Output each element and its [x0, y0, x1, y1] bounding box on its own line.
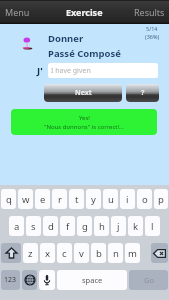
staticText: Results [134, 6, 165, 18]
staticText: I have given [51, 66, 91, 76]
button[interactable]: s [26, 216, 41, 236]
button[interactable]: d [43, 216, 58, 236]
staticText: Exercise [66, 6, 103, 18]
staticText: ? [141, 88, 145, 98]
staticText: v [79, 247, 84, 260]
staticText: 123 [4, 275, 17, 285]
button[interactable]: o [137, 189, 152, 209]
button[interactable]: Go [129, 270, 168, 290]
staticText: k [133, 220, 139, 233]
button[interactable]: Backspace [151, 243, 168, 263]
staticText: Next [75, 88, 92, 98]
staticText: (36%) [145, 33, 160, 40]
staticText: Passé Composé [48, 47, 121, 60]
button[interactable]: I have given [48, 63, 158, 78]
staticText: j [117, 220, 120, 233]
button[interactable]: Next [44, 84, 122, 102]
button[interactable]: space [57, 270, 127, 290]
staticText: f [66, 220, 70, 233]
staticText: o [142, 193, 148, 206]
staticText: Donner [48, 32, 84, 45]
staticText: space [82, 275, 103, 285]
button[interactable]: Change keyboard [22, 270, 37, 290]
button[interactable]: Numbers [1, 270, 20, 290]
button[interactable]: w [18, 189, 33, 209]
button[interactable]: q [1, 189, 16, 209]
staticText: i [126, 193, 129, 206]
staticText: b [96, 247, 102, 260]
staticText: x [45, 247, 51, 260]
button[interactable]: Menu [0, 1, 36, 23]
button[interactable]: Dictation [39, 270, 55, 290]
button[interactable]: j [111, 216, 126, 236]
staticText: c [62, 247, 67, 260]
staticText: r [58, 193, 62, 206]
staticText: J' [37, 64, 43, 77]
button[interactable]: t [69, 189, 84, 209]
button[interactable]: Results [128, 1, 169, 23]
button[interactable]: l [145, 216, 160, 236]
button[interactable]: c [57, 243, 72, 263]
staticText: "Nous donnons" is correct!... [44, 123, 124, 131]
button[interactable]: f [60, 216, 75, 236]
button[interactable]: e [35, 189, 50, 209]
button[interactable]: b [91, 243, 106, 263]
button[interactable]: Shift [1, 243, 21, 263]
staticText: e [40, 193, 46, 206]
staticText: w [22, 193, 30, 206]
staticText: a [14, 220, 20, 233]
button[interactable]: a [9, 216, 24, 236]
staticText: t [75, 193, 79, 206]
button[interactable]: v [74, 243, 89, 263]
staticText: Yes! [79, 114, 90, 122]
staticText: Go [144, 275, 154, 285]
staticText: Menu [5, 6, 30, 18]
button[interactable]: u [103, 189, 118, 209]
button[interactable]: y [86, 189, 101, 209]
staticText: n [113, 247, 119, 260]
button[interactable]: p [154, 189, 168, 209]
button[interactable]: i [120, 189, 135, 209]
button[interactable]: Yes! [11, 109, 157, 135]
staticText: y [91, 193, 96, 206]
staticText: q [6, 193, 12, 206]
staticText: d [48, 220, 54, 233]
staticText: z [28, 247, 33, 260]
staticText: h [99, 220, 105, 233]
button[interactable]: k [128, 216, 143, 236]
staticText: l [151, 220, 154, 233]
button[interactable]: r [52, 189, 67, 209]
button[interactable]: g [77, 216, 92, 236]
button[interactable]: ? [126, 84, 159, 102]
button[interactable]: z [23, 243, 38, 263]
button[interactable]: x [40, 243, 55, 263]
staticText: g [82, 220, 88, 233]
staticText: m [128, 247, 137, 260]
button[interactable]: m [125, 243, 140, 263]
button[interactable]: n [108, 243, 123, 263]
staticText: s [31, 220, 36, 233]
staticText: p [158, 193, 164, 206]
staticText: 5/14 [146, 25, 158, 32]
staticText: u [108, 193, 114, 206]
button[interactable]: h [94, 216, 109, 236]
